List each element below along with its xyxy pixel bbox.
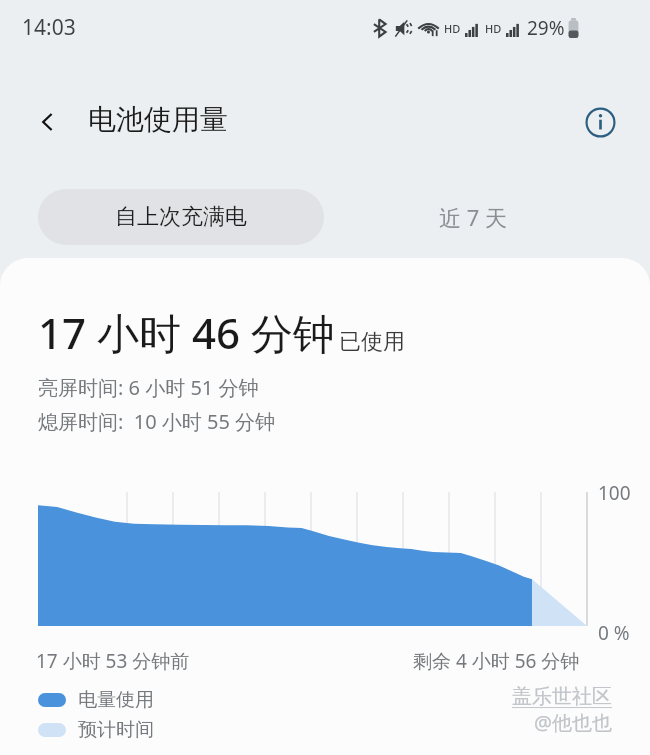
staticText: 预计时间 bbox=[78, 718, 154, 742]
staticText: 14:03 bbox=[22, 13, 76, 42]
staticText: 近 7 天 bbox=[439, 202, 508, 232]
staticText: 17 小时 46 分钟 bbox=[38, 304, 335, 361]
staticText: 亮屏时间: 6 小时 51 分钟 bbox=[38, 374, 259, 401]
button[interactable]: Back bbox=[26, 100, 70, 144]
button[interactable]: Information bbox=[578, 100, 622, 144]
staticText: HD bbox=[444, 21, 461, 36]
staticText: 剩余 4 小时 56 分钟 bbox=[413, 648, 580, 674]
staticText: 电量使用 bbox=[78, 688, 154, 712]
staticText: 0 % bbox=[598, 620, 630, 646]
staticText: HD bbox=[485, 21, 502, 36]
staticText: 自上次充满电 bbox=[115, 203, 247, 231]
button[interactable]: 自上次充满电 bbox=[38, 189, 324, 245]
staticText: 29% bbox=[527, 15, 565, 41]
staticText: 100 bbox=[598, 480, 631, 506]
staticText: 17 小时 53 分钟前 bbox=[36, 648, 190, 674]
staticText: 熄屏时间: 10 小时 55 分钟 bbox=[38, 408, 276, 435]
button[interactable]: 近 7 天 bbox=[338, 189, 608, 245]
staticText: 盖乐世社区 bbox=[512, 684, 612, 709]
staticText: 已使用 bbox=[339, 328, 405, 356]
staticText: 电池使用量 bbox=[88, 102, 228, 137]
staticText: @他也也 bbox=[534, 709, 612, 736]
